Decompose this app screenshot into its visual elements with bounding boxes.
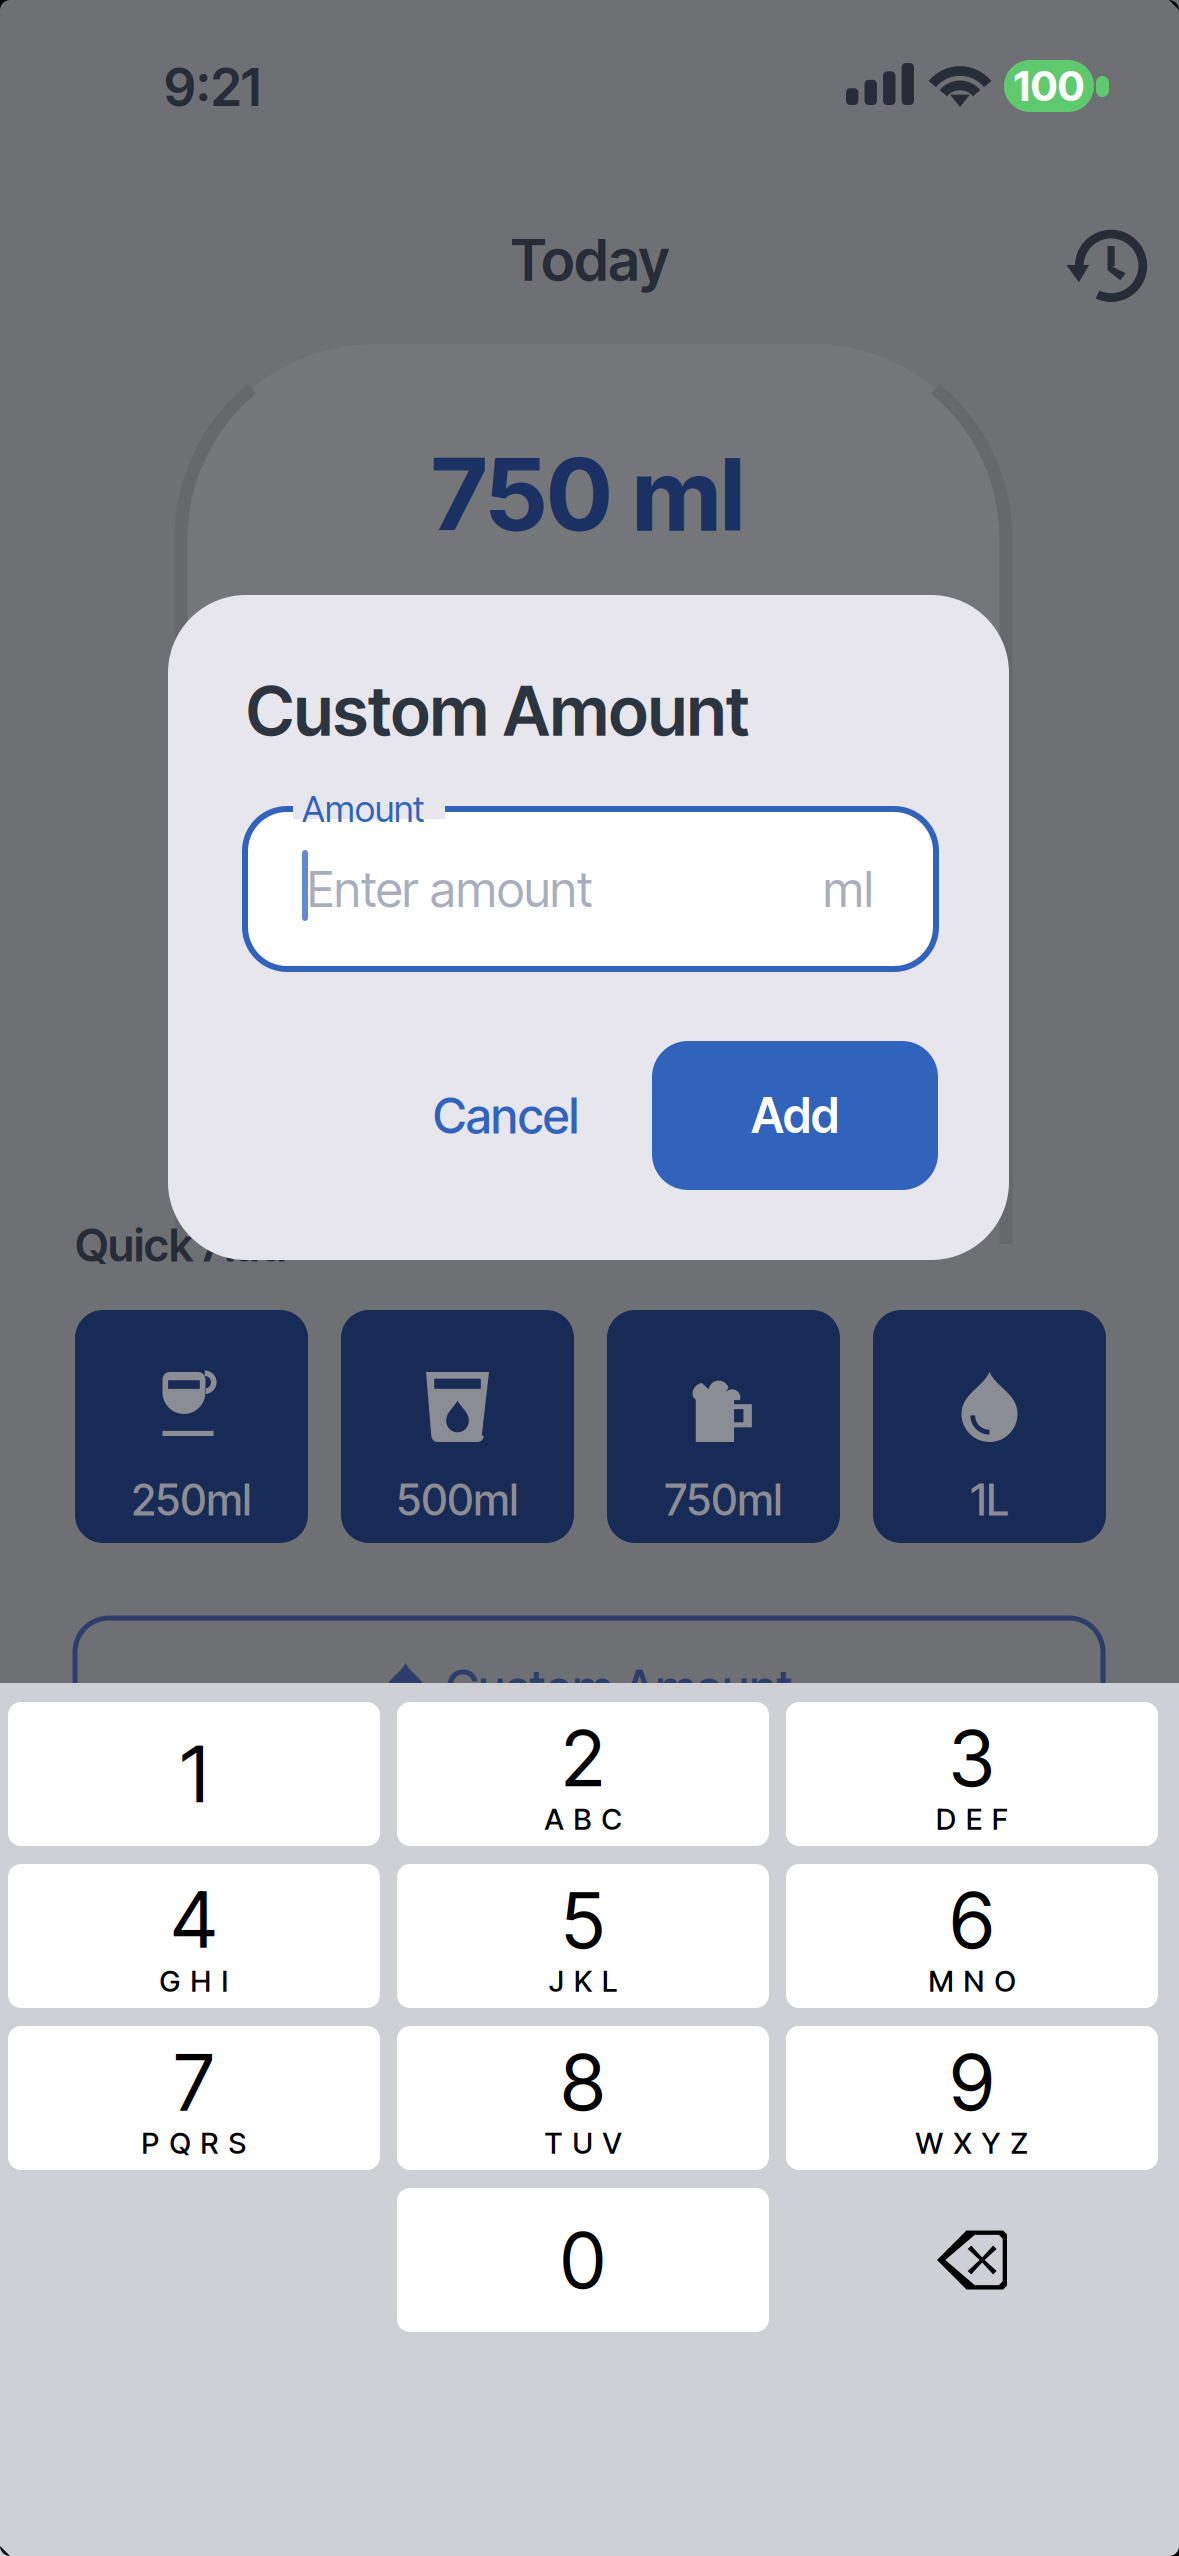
staticText: Amount — [302, 787, 424, 831]
button[interactable]: 500ml — [341, 1310, 574, 1543]
staticText: P Q R S — [141, 2125, 246, 2161]
staticText: Enter amount — [307, 859, 593, 919]
button[interactable]: 0 — [397, 2188, 769, 2332]
staticText: 8 — [561, 2035, 605, 2129]
staticText: J K L — [549, 1963, 617, 1999]
staticText: 5 — [561, 1873, 604, 1967]
button[interactable]: 6 — [786, 1864, 1158, 2008]
button[interactable]: 3 — [786, 1702, 1158, 1846]
button[interactable]: 5 — [397, 1864, 769, 2008]
staticText: 750ml — [664, 1474, 782, 1526]
staticText: Custom Amount — [246, 670, 749, 752]
staticText: 6 — [950, 1873, 994, 1967]
staticText: 9 — [950, 2035, 994, 2129]
button[interactable]: 750ml — [607, 1310, 840, 1543]
button[interactable]: 2 — [397, 1702, 769, 1846]
staticText: 1L — [970, 1474, 1008, 1526]
button[interactable]: 1 — [8, 1702, 380, 1846]
staticText: 750 ml — [431, 433, 744, 554]
button[interactable]: 9 — [786, 2026, 1158, 2170]
staticText: G H I — [159, 1963, 228, 1999]
staticText: 4 — [171, 1873, 217, 1967]
staticText: Custom Amount — [445, 1659, 792, 1717]
staticText: Cancel — [433, 1087, 579, 1145]
button[interactable]: Add — [652, 1041, 938, 1190]
button[interactable]: 250ml — [75, 1310, 308, 1543]
button[interactable]: 4 — [8, 1864, 380, 2008]
staticText: ml — [823, 859, 873, 919]
staticText: A B C — [544, 1801, 621, 1837]
staticText: 1 — [180, 1727, 207, 1821]
button[interactable]: 8 — [397, 2026, 769, 2170]
staticText: D E F — [936, 1801, 1008, 1837]
button[interactable]: Custom Amount — [75, 1618, 1103, 1758]
staticText: 100 — [1013, 61, 1084, 111]
button[interactable]: 7 — [8, 2026, 380, 2170]
staticText: 500ml — [396, 1474, 518, 1526]
staticText: 0 — [560, 2213, 605, 2307]
staticText: Quick Add — [75, 1218, 287, 1272]
button[interactable]: History — [1060, 218, 1152, 310]
staticText: 9:21 — [164, 55, 261, 118]
staticText: 3 — [949, 1711, 995, 1805]
staticText: W X Y Z — [915, 2125, 1028, 2161]
staticText: 2 — [561, 1711, 604, 1805]
staticText: M N O — [928, 1963, 1015, 1999]
staticText: 7 — [174, 2035, 214, 2129]
staticText: Today — [510, 225, 669, 295]
staticText: Add — [751, 1086, 839, 1145]
button[interactable]: 1L — [873, 1310, 1106, 1543]
button[interactable]: Cancel — [406, 1049, 606, 1183]
staticText: 250ml — [131, 1474, 251, 1526]
staticText: T U V — [544, 2125, 621, 2161]
button[interactable]: Delete — [786, 2188, 1158, 2332]
